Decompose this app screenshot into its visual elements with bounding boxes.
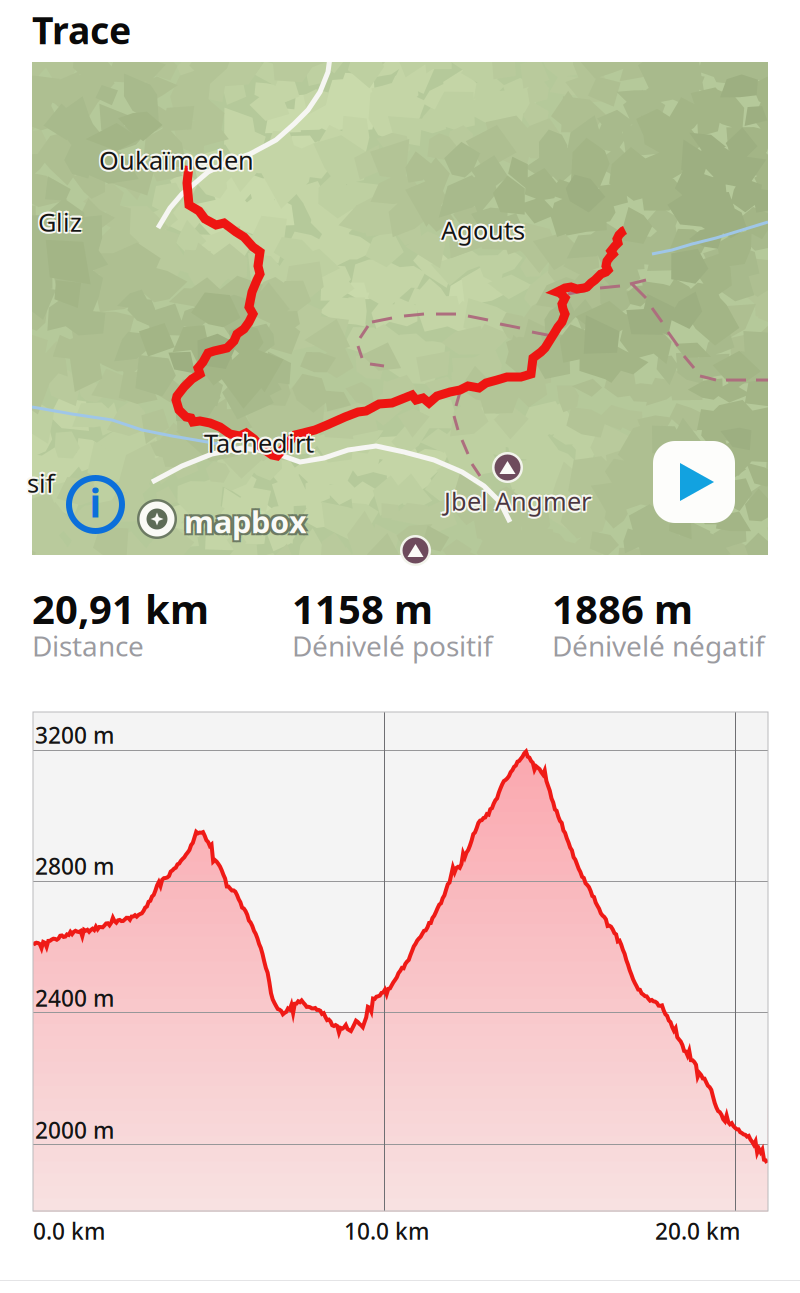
staticText: mapbox [186,499,309,540]
staticText: 1886 m [552,582,693,635]
staticText: 10.0 km [344,1216,429,1246]
staticText: 0.0 km [33,1216,105,1246]
staticText: Agouts [439,211,523,245]
staticText: Oukaïmeden [99,141,254,174]
staticText: mapbox [184,501,307,542]
staticText: 1158 m [292,582,433,635]
staticText: Oukaïmeden [99,145,254,179]
staticText: Jbel Angmer [446,482,593,516]
staticText: 2000 m [35,1115,114,1145]
staticText: Tachedirt [206,424,316,458]
staticText: i [89,477,101,528]
staticText: Tachedirt [204,426,314,460]
staticText: Gliz [38,203,82,236]
staticText: sif [27,468,55,502]
staticText: mapbox [182,499,305,540]
staticText: Tachedirt [204,428,314,462]
staticText: Agouts [441,215,525,249]
staticText: Oukaïmeden [101,145,256,178]
staticText: Gliz [38,205,82,239]
staticText: Jbel Angmer [442,486,589,519]
staticText: Jbel Angmer [444,486,591,520]
staticText: Gliz [40,203,84,237]
staticText: Oukaïmeden [97,145,252,178]
staticText: 2400 m [35,983,114,1013]
staticText: Jbel Angmer [444,484,591,518]
staticText: Gliz [36,207,80,240]
staticText: Agouts [443,211,527,245]
staticText: Dénivelé négatif [552,627,765,664]
staticText: sif [25,464,53,498]
button[interactable]: Map information [69,478,122,531]
staticText: Agouts [441,211,525,244]
staticText: Gliz [40,207,84,240]
staticText: Agouts [439,215,523,248]
staticText: Tachedirt [202,424,312,458]
staticText: Jbel Angmer [444,482,591,515]
staticText: Tachedirt [202,428,312,461]
staticText: 2800 m [35,851,114,881]
staticText: Gliz [38,207,82,241]
staticText: sif [29,468,57,501]
staticText: 20,91 km [32,582,209,635]
staticText: Trace [32,5,131,55]
staticText: Gliz [36,203,80,237]
staticText: sif [27,466,55,500]
staticText: sif [27,464,55,497]
staticText: Agouts [443,215,527,248]
staticText: Agouts [441,213,525,247]
button[interactable]: Play track animation [653,441,735,523]
staticText: mapbox [182,503,305,544]
staticText: Oukaïmeden [99,143,254,177]
staticText: Distance [32,627,144,664]
staticText: sif [29,464,57,498]
staticText: Tachedirt [206,428,316,461]
staticText: Jbel Angmer [446,486,593,519]
staticText: 20.0 km [655,1216,740,1246]
staticText: mapbox [186,503,309,544]
staticText: Dénivelé positif [292,627,493,664]
staticText: Jbel Angmer [442,482,589,516]
staticText: Oukaïmeden [101,141,256,175]
staticText: 3200 m [35,720,114,750]
staticText: sif [25,468,53,501]
staticText: Tachedirt [204,424,314,457]
staticText: Oukaïmeden [97,141,252,175]
